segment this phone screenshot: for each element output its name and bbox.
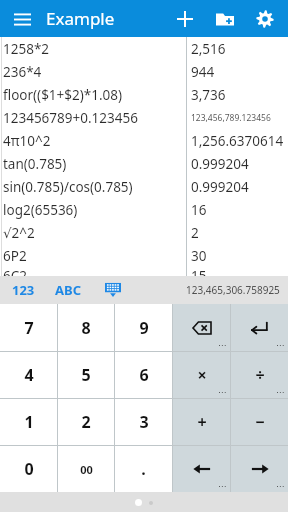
button[interactable]: 6P2 [0, 244, 288, 267]
staticText: 123 [12, 281, 35, 299]
button[interactable]: Move left [173, 446, 230, 492]
staticText: 236*4 [3, 63, 42, 81]
button[interactable]: ABC [53, 278, 83, 302]
button[interactable]: floor(($1+$2)*1.08) [0, 83, 288, 106]
staticText: log2(65536) [3, 201, 78, 219]
staticText: 0 [24, 458, 34, 480]
staticText: 6P2 [3, 247, 27, 265]
staticText: ⋯ [218, 341, 226, 350]
button[interactable]: . [115, 446, 172, 492]
staticText: × [197, 364, 207, 386]
staticText: 944 [191, 63, 215, 81]
button[interactable]: sin(0.785)/cos(0.785) [0, 175, 288, 198]
button[interactable]: log2(65536) [0, 198, 288, 221]
staticText: ⋯ [276, 341, 284, 350]
staticText: 16 [191, 201, 207, 219]
button[interactable]: Backspace [173, 304, 230, 351]
staticText: + [197, 411, 207, 433]
button[interactable]: + [173, 399, 230, 445]
staticText: 3,736 [191, 86, 226, 104]
button[interactable]: 8 [58, 304, 114, 351]
button[interactable]: √2^2 [0, 221, 288, 244]
staticText: 8 [81, 317, 91, 339]
staticText: floor(($1+$2)*1.08) [3, 86, 123, 104]
staticText: . [141, 458, 146, 480]
button[interactable]: New folder [210, 4, 240, 34]
button[interactable]: 123 [10, 278, 37, 302]
button[interactable]: 5 [58, 352, 114, 398]
button[interactable]: Menu [8, 5, 36, 33]
staticText: 7 [24, 317, 34, 339]
staticText: 0.999204 [191, 155, 249, 173]
staticText: √2^2 [3, 224, 35, 242]
button[interactable]: 236*4 [0, 60, 288, 83]
staticText: 123,456,789.123456 [191, 112, 271, 124]
button[interactable]: 1 [0, 399, 57, 445]
staticText: ÷ [255, 364, 265, 386]
staticText: 3 [139, 411, 149, 433]
staticText: 6C2 [3, 267, 27, 276]
staticText: ⋯ [218, 388, 226, 397]
button[interactable]: Move right [231, 446, 288, 492]
staticText: ⋯ [218, 482, 226, 491]
staticText: 30 [191, 247, 207, 265]
button[interactable]: Settings [250, 4, 280, 34]
button[interactable]: Hide keyboard [101, 278, 125, 302]
button[interactable]: 6 [115, 352, 172, 398]
staticText: 1 [24, 411, 34, 433]
button[interactable]: Enter [231, 304, 288, 351]
button[interactable]: 4 [0, 352, 57, 398]
button[interactable]: − [231, 399, 288, 445]
button[interactable]: 9 [115, 304, 172, 351]
button[interactable]: ÷ [231, 352, 288, 398]
staticText: − [255, 411, 265, 433]
staticText: 5 [81, 364, 91, 386]
staticText: ABC [55, 281, 81, 299]
staticText: 2 [81, 411, 91, 433]
staticText: sin(0.785)/cos(0.785) [3, 178, 133, 196]
button[interactable]: 7 [0, 304, 57, 351]
button[interactable]: 3 [115, 399, 172, 445]
button[interactable]: 1258*2 [0, 37, 288, 60]
staticText: 123,465,306.758925 [186, 283, 280, 297]
staticText: 2 [191, 224, 199, 242]
staticText: 9 [139, 317, 149, 339]
button[interactable]: Add [170, 4, 200, 34]
staticText: 4 [24, 364, 34, 386]
staticText: 00 [80, 462, 93, 477]
staticText: 15 [191, 267, 207, 276]
staticText: ⋯ [276, 482, 284, 491]
staticText: 123456789+0.123456 [3, 109, 138, 127]
button[interactable]: 6C2 [0, 267, 288, 276]
staticText: 6 [139, 364, 149, 386]
button[interactable]: × [173, 352, 230, 398]
button[interactable]: 0 [0, 446, 57, 492]
staticText: tan(0.785) [3, 155, 67, 173]
staticText: Example [46, 7, 115, 30]
staticText: 4π10^2 [3, 132, 51, 150]
staticText: 1,256.6370614 [191, 132, 284, 150]
button[interactable]: 00 [58, 446, 114, 492]
button[interactable]: tan(0.785) [0, 152, 288, 175]
staticText: 0.999204 [191, 178, 249, 196]
staticText: 1258*2 [3, 40, 50, 58]
button[interactable]: 123456789+0.123456 [0, 106, 288, 129]
staticText: 2,516 [191, 40, 226, 58]
button[interactable]: 4π10^2 [0, 129, 288, 152]
staticText: ⋯ [276, 388, 284, 397]
button[interactable]: 2 [58, 399, 114, 445]
